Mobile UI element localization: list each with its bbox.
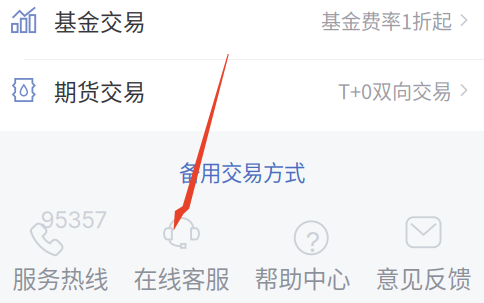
staticText: 期货交易 (54, 74, 146, 107)
button[interactable]: 期货交易 (0, 60, 484, 131)
staticText: 帮助中心 (254, 260, 350, 295)
staticText: T+0双向交易 (338, 76, 452, 105)
staticText: 在线客服 (133, 260, 229, 295)
staticText: 备用交易方式 (179, 156, 305, 187)
button[interactable]: 在线客服 (121, 198, 242, 303)
staticText: 意见反馈 (375, 260, 471, 295)
button[interactable]: 意见反馈 (363, 198, 484, 303)
button[interactable]: 95357 (0, 198, 121, 303)
staticText: 基金费率1折起 (321, 6, 452, 35)
button[interactable]: ? (242, 198, 363, 303)
staticText: 基金交易 (54, 4, 146, 37)
staticText: 95357 (40, 206, 107, 234)
staticText: 服务热线 (12, 260, 108, 295)
button[interactable]: 基金交易 (0, 0, 484, 59)
staticText: ? (306, 225, 320, 259)
